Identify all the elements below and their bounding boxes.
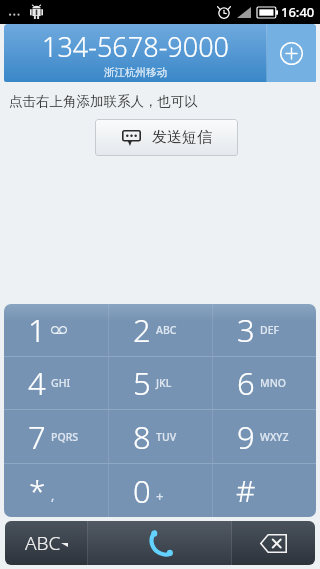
staticText: JKL [156,376,172,390]
staticText: TUV [156,430,177,444]
button[interactable]: 6 [213,357,316,409]
staticText: 5 [133,362,151,404]
button[interactable]: # [213,464,316,517]
staticText: + [156,487,164,505]
staticText: 点击右上角添加联系人，也可以 [9,93,198,110]
staticText: 134-5678-9000 [42,28,229,65]
staticText: 2 [133,309,151,351]
staticText: 4 [28,362,46,404]
staticText: , [51,487,55,503]
button[interactable]: Call [88,521,231,565]
button[interactable]: Delete [232,521,315,565]
staticText: 0 [133,470,151,512]
staticText: 1 [28,309,46,351]
staticText: ABC [25,530,61,556]
staticText: 8 [133,416,151,458]
button[interactable]: Add contact [267,24,316,82]
button[interactable]: 4 [4,357,108,409]
staticText: 浙江杭州移动 [104,66,167,79]
button[interactable]: 3 [213,304,316,356]
button[interactable]: 5 [109,357,212,409]
staticText: PQRS [51,430,79,444]
staticText: ABC [156,323,177,337]
staticText: 3 [237,309,255,351]
staticText: WXYZ [260,430,289,444]
button[interactable]: 0 [109,464,212,517]
staticText: 9 [237,416,255,458]
staticText: 7 [28,416,46,458]
button[interactable]: 7 [4,410,108,463]
staticText: MNO [260,376,287,390]
button[interactable]: 发送短信 [95,119,238,156]
button[interactable]: * [4,464,108,517]
staticText: GHI [51,376,71,390]
staticText: 16:40 [281,3,315,21]
staticText: # [236,470,256,511]
staticText: DEF [260,323,280,337]
button[interactable]: 8 [109,410,212,463]
button[interactable]: 2 [109,304,212,356]
button[interactable]: 1 [4,304,108,356]
staticText: * [29,470,46,511]
button[interactable]: 9 [213,410,316,463]
staticText: 发送短信 [152,128,212,147]
staticText: 6 [237,362,255,404]
button[interactable]: ABC [5,521,87,565]
